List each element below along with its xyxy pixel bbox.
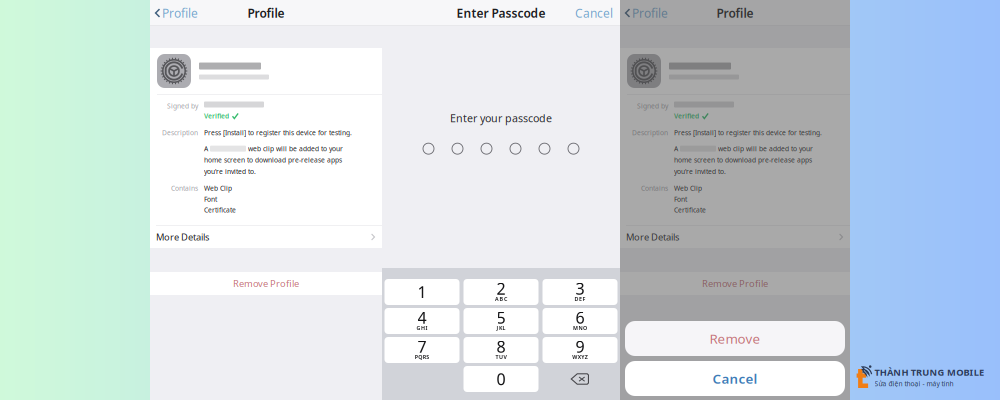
staticText: 6 [575,307,584,328]
staticText: A [204,144,208,153]
staticText: Sửa điện thoại - máy tính [875,379,954,388]
button[interactable]: 0 [463,366,538,392]
button[interactable]: More Details [150,226,382,248]
staticText: DEF [574,295,586,303]
staticText: Enter Passcode [456,5,545,21]
staticText: More Details [156,231,209,243]
staticText: THÀNH TRUNG MOBILE [875,366,984,378]
staticText: Remove Profile [233,277,299,290]
staticText: Contains [171,184,198,193]
button[interactable]: Remove Profile [150,272,382,295]
staticText: 8 [496,336,505,357]
staticText: home screen to download pre-release apps [204,156,342,164]
staticText: PQRS [415,353,429,361]
staticText: Signed by [167,101,198,110]
staticText: Profile [247,5,284,21]
staticText: TUV [495,353,507,361]
button[interactable]: Cancel [568,0,620,26]
button[interactable]: 4 [384,308,459,334]
button[interactable]: Remove [625,321,845,356]
staticText: Verified [204,111,229,120]
staticText: you're invited to. [674,167,726,176]
staticText: Signed by [637,101,668,110]
staticText: Press [Install] to register this device … [204,128,352,137]
staticText: Remove [709,330,760,347]
staticText: Cancel [712,370,757,387]
button[interactable]: 7 [384,337,459,363]
staticText: Profile [632,5,668,21]
staticText: Remove Profile [702,277,768,290]
staticText: Profile [162,5,198,21]
staticText: web clip will be added to your [248,144,343,153]
staticText: web clip will be added to your [718,144,813,153]
staticText: 3 [575,278,584,299]
staticText: 2 [496,278,505,299]
staticText: Profile [716,5,753,21]
staticText: Verified [674,111,699,120]
staticText: JKL [496,324,506,332]
button[interactable]: 8 [463,337,538,363]
staticText: ABC [495,295,507,303]
button[interactable]: Profile [150,0,204,26]
staticText: 9 [575,336,584,357]
staticText: Press [Install] to register this device … [674,128,822,137]
button[interactable]: 3 [542,279,617,305]
staticText: More Details [626,231,679,243]
button[interactable]: Delete [542,366,617,392]
staticText: Font [204,195,217,203]
button[interactable]: Remove Profile [620,272,850,295]
staticText: GHI [416,324,428,332]
button[interactable]: 5 [463,308,538,334]
button[interactable]: 6 [542,308,617,334]
staticText: Web Clip [674,184,702,193]
staticText: 4 [417,307,426,328]
staticText: home screen to download pre-release apps [674,156,812,164]
staticText: Contains [641,184,668,193]
button[interactable]: Cancel [625,361,845,396]
button[interactable]: 2 [463,279,538,305]
button[interactable]: 1 [384,279,459,305]
staticText: A [674,144,678,153]
button[interactable]: More Details [620,226,850,248]
button[interactable]: 9 [542,337,617,363]
staticText: Web Clip [204,184,232,193]
staticText: Certificate [204,205,236,214]
button[interactable]: Profile [620,0,674,26]
staticText: Description [632,128,668,137]
staticText: Certificate [674,205,706,214]
staticText: Description [162,128,198,137]
staticText: 5 [496,307,505,328]
staticText: 7 [417,336,426,357]
staticText: MNO [573,324,587,332]
staticText: WXYZ [572,353,588,361]
staticText: Enter your passcode [450,111,552,125]
staticText: you're invited to. [204,167,256,176]
staticText: 1 [417,281,426,303]
staticText: Font [674,195,687,203]
staticText: Cancel [575,5,613,21]
staticText: 0 [496,368,505,390]
